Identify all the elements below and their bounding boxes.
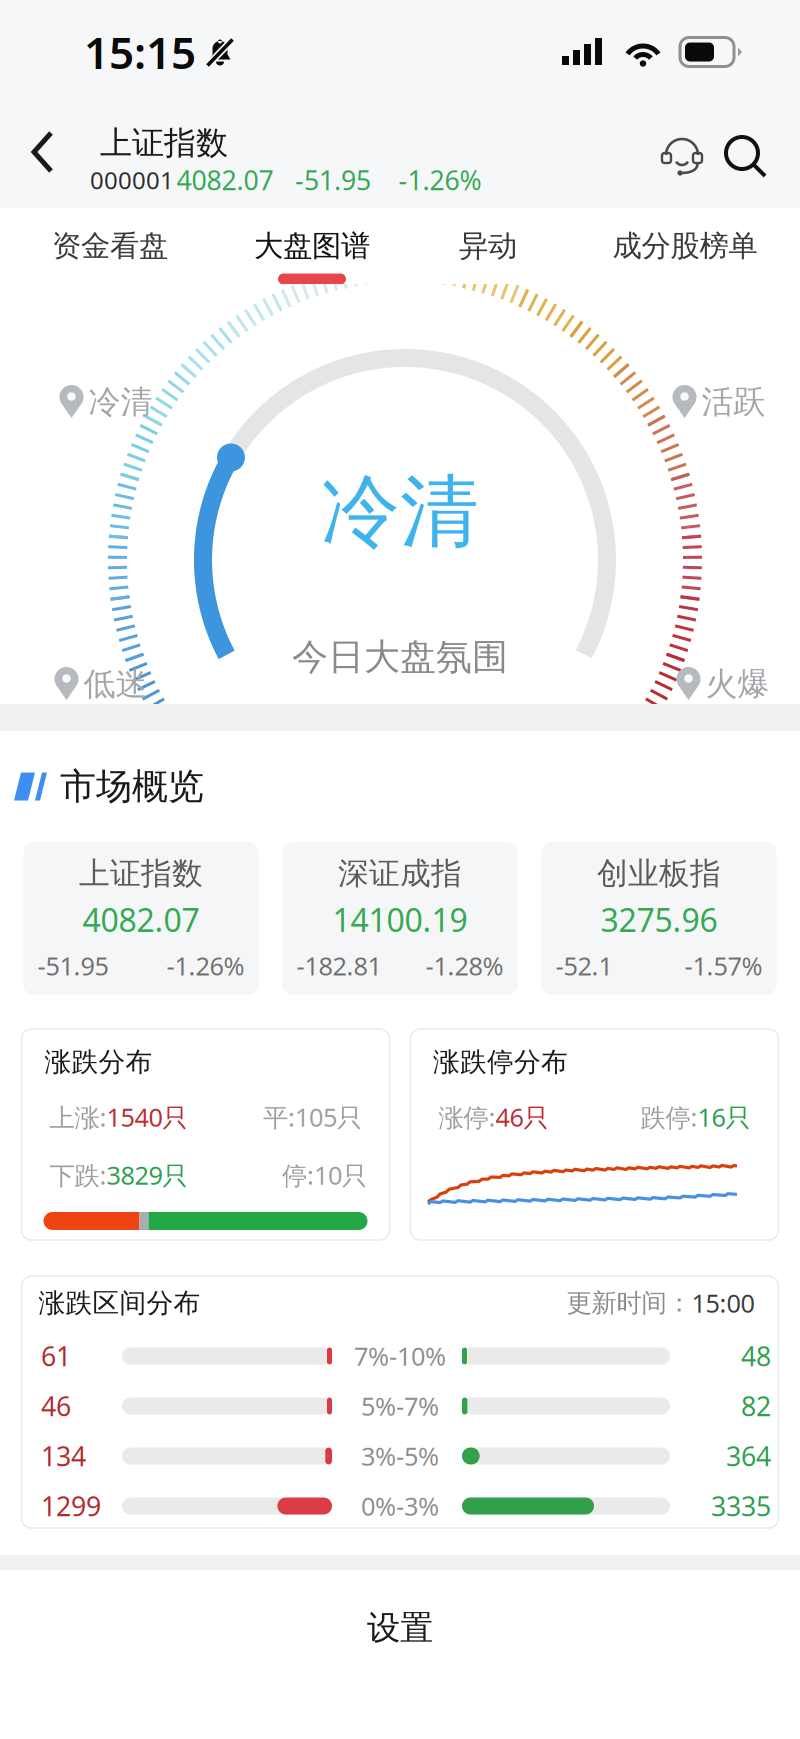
staticText: 跌停: [640,1100,697,1134]
staticText: 涨跌停分布 [433,1046,568,1078]
staticText: 停: [282,1158,314,1192]
staticText: -1.57% [684,949,762,982]
staticText: 4082.07 [176,162,273,198]
staticText: 364 [726,1438,771,1474]
staticText: 10只 [314,1158,367,1192]
staticText: 7%-10% [354,1339,446,1373]
button[interactable]: Back [26,119,60,185]
staticText: 资金看盘 [52,228,168,264]
staticText: -52.1 [555,949,612,982]
staticText: 涨停: [438,1100,495,1134]
staticText: 平: [263,1100,295,1134]
staticText: 深证成指 [338,855,462,892]
staticText: 1299 [41,1488,101,1524]
staticText: -182.81 [296,949,381,982]
staticText: -51.95 [37,949,108,982]
staticText: 5%-7% [361,1389,439,1423]
staticText: 涨跌区间分布 [38,1287,200,1319]
staticText: 15:00 [691,1286,754,1320]
staticText: 61 [41,1338,71,1374]
staticText: -51.95 [295,162,371,198]
staticText: 涨跌分布 [44,1046,152,1078]
staticText: 3%-5% [361,1439,439,1473]
staticText: 3335 [711,1488,771,1524]
staticText: 15:15 [84,23,196,81]
staticText: 冷清 [88,382,152,422]
staticText: 0%-3% [361,1489,439,1523]
staticText: -1.28% [425,949,503,982]
staticText: 上涨: [49,1100,106,1134]
staticText: 3275.96 [600,898,717,941]
staticText: -1.26% [398,162,481,198]
button[interactable]: 资金看盘 [52,215,168,277]
staticText: 000001 [90,164,174,196]
staticText: 1540只 [106,1100,187,1134]
staticText: 上证指数 [100,123,228,163]
staticText: 更新时间： [566,1287,691,1318]
button[interactable]: Customer service [657,131,707,181]
staticText: -1.26% [166,949,244,982]
staticText: 低迷 [83,664,147,704]
staticText: 市场概览 [60,764,204,809]
staticText: 134 [41,1438,86,1474]
button[interactable]: 异动 [459,215,517,277]
staticText: 82 [741,1388,771,1424]
staticText: 大盘图谱 [254,228,370,264]
staticText: 105只 [295,1100,362,1134]
staticText: 设置 [367,1607,433,1648]
staticText: 冷清 [321,464,479,560]
staticText: 46只 [495,1100,548,1134]
button[interactable]: 大盘图谱 [254,215,370,277]
staticText: 成分股榜单 [612,228,757,264]
staticText: 46 [41,1388,71,1424]
staticText: 今日大盘氛围 [292,635,508,679]
staticText: 48 [741,1338,771,1374]
staticText: 3829只 [106,1158,187,1192]
staticText: 创业板指 [597,855,721,892]
staticText: 16只 [697,1100,750,1134]
button[interactable]: 成分股榜单 [612,215,757,277]
staticText: 上证指数 [79,855,203,892]
staticText: 下跌: [49,1158,106,1192]
staticText: 14100.19 [332,898,467,941]
staticText: 活跃 [701,382,765,422]
button[interactable]: 设置 [0,1570,800,1686]
staticText: 异动 [459,228,517,264]
staticText: 火爆 [705,664,769,704]
staticText: 4082.07 [82,898,199,941]
button[interactable]: Search [721,132,769,180]
